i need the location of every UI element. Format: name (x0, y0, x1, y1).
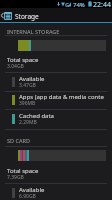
staticText: 3.04GB (7, 63, 24, 70)
button[interactable]: Available (0, 72, 112, 90)
staticText: Available (19, 186, 45, 194)
button[interactable]: Available (0, 183, 112, 200)
staticText: Total space (7, 56, 39, 64)
staticText: Available (19, 75, 45, 83)
staticText: 22:44 (93, 0, 111, 8)
staticText: 7.39GB (7, 174, 24, 181)
button[interactable]: Cached data (0, 109, 112, 127)
staticText: G (65, 1, 70, 9)
button[interactable]: Total space (0, 164, 112, 182)
staticText: Storage (15, 12, 39, 21)
staticText: Cached data (19, 112, 54, 120)
button[interactable]: Apps (app data & media conte (0, 90, 112, 108)
button[interactable]: Navigate up (0, 8, 13, 22)
staticText: Total space (7, 167, 39, 175)
staticText: 396MB (19, 100, 36, 107)
staticText: 6.90GB (19, 193, 36, 200)
staticText: SD CARD (7, 137, 31, 144)
staticText: 2.29MB (19, 119, 37, 126)
staticText: Apps (app data & media conte (19, 93, 104, 101)
staticText: 3.47GB (19, 82, 36, 89)
staticText: INTERNAL STORAGE (7, 28, 60, 35)
button[interactable]: Total space (0, 53, 112, 71)
staticText: 74% (73, 1, 85, 9)
